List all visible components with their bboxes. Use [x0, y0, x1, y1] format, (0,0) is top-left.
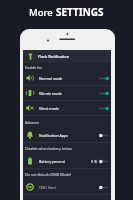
staticText: Flash Notification — [38, 54, 69, 59]
button[interactable]: Vibrate mode — [23, 86, 111, 100]
staticText: 5 % — [91, 159, 97, 164]
staticText: Normal mode — [39, 76, 99, 81]
button[interactable]: Silent mode — [23, 101, 111, 115]
staticText: SETTINGS — [56, 5, 104, 19]
staticText: More — [29, 6, 56, 19]
staticText: Vibrate mode — [39, 91, 99, 96]
staticText: DND Start — [39, 185, 99, 190]
staticText: Disable when battery below — [25, 146, 72, 151]
staticText: Do not disturb (DND Mode) — [25, 172, 72, 177]
button[interactable]: Flash Notification — [23, 50, 111, 63]
button[interactable]: DND Start — [23, 180, 111, 194]
button[interactable]: Notification Apps — [23, 128, 111, 142]
staticText: Notification Apps — [39, 133, 99, 138]
button[interactable]: Battery percent — [23, 154, 111, 168]
staticText: Enable for — [25, 65, 43, 70]
staticText: Advance — [25, 120, 40, 125]
button[interactable]: Normal mode — [23, 71, 111, 85]
staticText: Battery percent — [39, 159, 91, 164]
staticText: Silent mode — [39, 106, 99, 111]
